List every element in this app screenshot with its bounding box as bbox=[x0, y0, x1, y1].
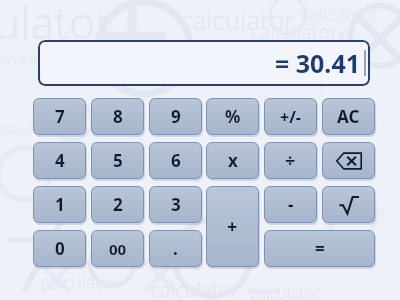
staticText: 0 bbox=[55, 237, 65, 260]
staticText: calculator bbox=[250, 282, 321, 300]
button[interactable]: 7 bbox=[33, 98, 86, 135]
staticText: 3 bbox=[171, 193, 181, 216]
staticText: calculator bbox=[0, 120, 58, 138]
button[interactable]: 4 bbox=[33, 142, 86, 179]
button[interactable]: Square root bbox=[322, 186, 375, 223]
staticText: 2 bbox=[113, 193, 123, 216]
button[interactable]: - bbox=[264, 186, 317, 223]
button[interactable]: 1 bbox=[33, 186, 86, 223]
button[interactable]: 8 bbox=[91, 98, 144, 135]
staticText: . bbox=[173, 237, 178, 260]
staticText: calculator bbox=[40, 270, 120, 295]
staticText: - bbox=[288, 193, 294, 216]
button[interactable]: x bbox=[206, 142, 259, 179]
staticText: = 30.41 bbox=[274, 46, 360, 80]
button[interactable]: . bbox=[149, 230, 202, 267]
staticText: calculator bbox=[0, 50, 52, 69]
staticText: 00 bbox=[109, 239, 127, 259]
button[interactable]: +/- bbox=[264, 98, 317, 135]
staticText: calculator bbox=[300, 2, 380, 27]
staticText: calculator bbox=[330, 200, 388, 218]
staticText: calculator bbox=[60, 40, 140, 65]
staticText: calculator bbox=[320, 120, 378, 138]
button[interactable]: 3 bbox=[149, 186, 202, 223]
button[interactable]: = 30.41 bbox=[38, 40, 370, 86]
staticText: +/- bbox=[280, 106, 301, 128]
staticText: calculator bbox=[250, 18, 339, 45]
button[interactable]: ÷ bbox=[264, 142, 317, 179]
staticText: % bbox=[225, 105, 241, 128]
staticText: calculator bbox=[150, 276, 239, 300]
staticText: + bbox=[227, 214, 238, 239]
staticText: = bbox=[315, 237, 325, 260]
button[interactable]: Backspace bbox=[322, 142, 375, 179]
button[interactable]: % bbox=[206, 98, 259, 135]
staticText: 1 bbox=[55, 193, 65, 216]
button[interactable]: 00 bbox=[91, 230, 144, 267]
button[interactable]: 9 bbox=[149, 98, 202, 135]
staticText: AC bbox=[337, 105, 360, 128]
staticText: calculator bbox=[180, 2, 295, 37]
button[interactable]: 0 bbox=[33, 230, 86, 267]
button[interactable]: AC bbox=[322, 98, 375, 135]
staticText: 8 bbox=[113, 105, 123, 128]
staticText: 7 bbox=[55, 105, 65, 128]
button[interactable]: 5 bbox=[91, 142, 144, 179]
staticText: ulator bbox=[0, 0, 113, 52]
staticText: ÷ bbox=[285, 148, 296, 173]
staticText: 5 bbox=[113, 149, 123, 172]
button[interactable]: 2 bbox=[91, 186, 144, 223]
button[interactable]: 6 bbox=[149, 142, 202, 179]
staticText: 4 bbox=[55, 149, 65, 172]
button[interactable]: + bbox=[206, 186, 259, 267]
staticText: x bbox=[228, 149, 238, 172]
staticText: 6 bbox=[171, 149, 181, 172]
staticText: 9 bbox=[171, 105, 181, 128]
button[interactable]: = bbox=[264, 230, 375, 267]
